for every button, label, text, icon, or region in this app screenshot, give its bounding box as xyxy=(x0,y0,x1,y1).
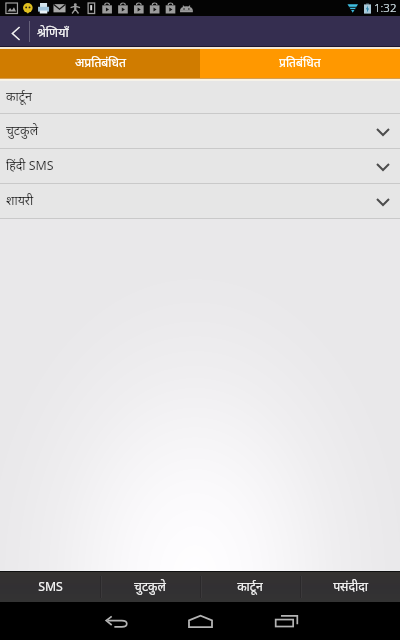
staticText: चुटकुले xyxy=(134,578,166,595)
button[interactable]: Navigate up xyxy=(0,16,30,46)
staticText: कार्टून xyxy=(6,88,32,105)
staticText: शायरी xyxy=(6,192,34,209)
button[interactable]: चुटकुले xyxy=(100,572,200,602)
staticText: कार्टून xyxy=(237,578,263,595)
button[interactable]: Home xyxy=(158,602,242,640)
button[interactable]: Recent apps xyxy=(244,602,328,640)
button[interactable]: प्रतिबंधित xyxy=(200,49,400,78)
button[interactable]: हिंदी SMS xyxy=(0,149,400,184)
staticText: पसंदीदा xyxy=(333,578,368,595)
staticText: श्रेणियाँ xyxy=(37,24,69,41)
staticText: प्रतिबंधित xyxy=(279,54,321,71)
button[interactable]: कार्टून xyxy=(200,572,300,602)
button[interactable]: Back xyxy=(75,602,159,640)
button[interactable]: कार्टून xyxy=(0,81,400,114)
staticText: SMS xyxy=(38,578,63,595)
staticText: हिंदी SMS xyxy=(6,157,54,174)
button[interactable]: शायरी xyxy=(0,184,400,219)
button[interactable]: SMS xyxy=(0,572,100,602)
staticText: 1:32 xyxy=(374,0,397,16)
button[interactable]: चुटकुले xyxy=(0,114,400,149)
button[interactable]: पसंदीदा xyxy=(300,572,400,602)
button[interactable]: अप्रतिबंधित xyxy=(0,49,200,78)
staticText: अप्रतिबंधित xyxy=(75,54,126,71)
staticText: चुटकुले xyxy=(6,122,39,139)
